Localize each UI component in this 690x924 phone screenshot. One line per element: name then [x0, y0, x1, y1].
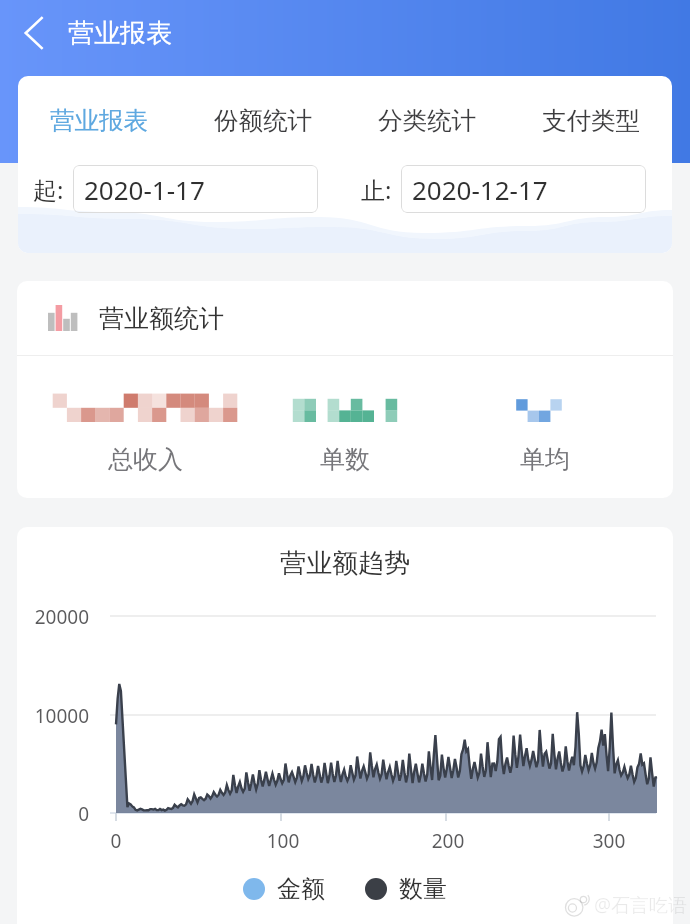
button[interactable]: 分类统计: [378, 97, 476, 144]
staticText: 单数: [320, 444, 370, 475]
button[interactable]: 营业报表: [50, 97, 148, 144]
staticText: 0: [86, 828, 146, 854]
staticText: 营业报表: [50, 105, 148, 136]
button[interactable]: 单均: [445, 356, 645, 475]
button[interactable]: 总收入: [45, 356, 245, 475]
button[interactable]: 数量: [365, 874, 447, 904]
staticText: 单均: [520, 444, 570, 475]
staticText: 10000: [17, 703, 89, 729]
staticText: 起:: [33, 173, 64, 206]
staticText: 20000: [17, 604, 89, 630]
staticText: 分类统计: [378, 105, 476, 136]
staticText: 份额统计: [214, 105, 312, 136]
staticText: 总收入: [108, 444, 183, 475]
staticText: 支付类型: [542, 105, 640, 136]
staticText: 金额: [277, 874, 325, 904]
staticText: 2020-12-17: [412, 172, 548, 207]
staticText: 数量: [399, 874, 447, 904]
button[interactable]: 支付类型: [542, 97, 640, 144]
button[interactable]: Back: [0, 0, 67, 66]
staticText: 营业额趋势: [280, 547, 410, 580]
staticText: 0: [17, 801, 89, 827]
staticText: @石言吃语: [594, 892, 688, 918]
staticText: 200: [418, 828, 478, 854]
staticText: 100: [253, 828, 313, 854]
button[interactable]: 2020-1-17: [73, 165, 318, 213]
staticText: 300: [579, 828, 639, 854]
staticText: 止:: [361, 173, 392, 206]
staticText: 营业额统计: [99, 303, 224, 334]
staticText: 营业报表: [68, 17, 172, 50]
button[interactable]: 2020-12-17: [401, 165, 646, 213]
button[interactable]: 金额: [243, 874, 325, 904]
button[interactable]: 份额统计: [214, 97, 312, 144]
button[interactable]: 单数: [245, 356, 445, 475]
staticText: 2020-1-17: [84, 172, 205, 207]
